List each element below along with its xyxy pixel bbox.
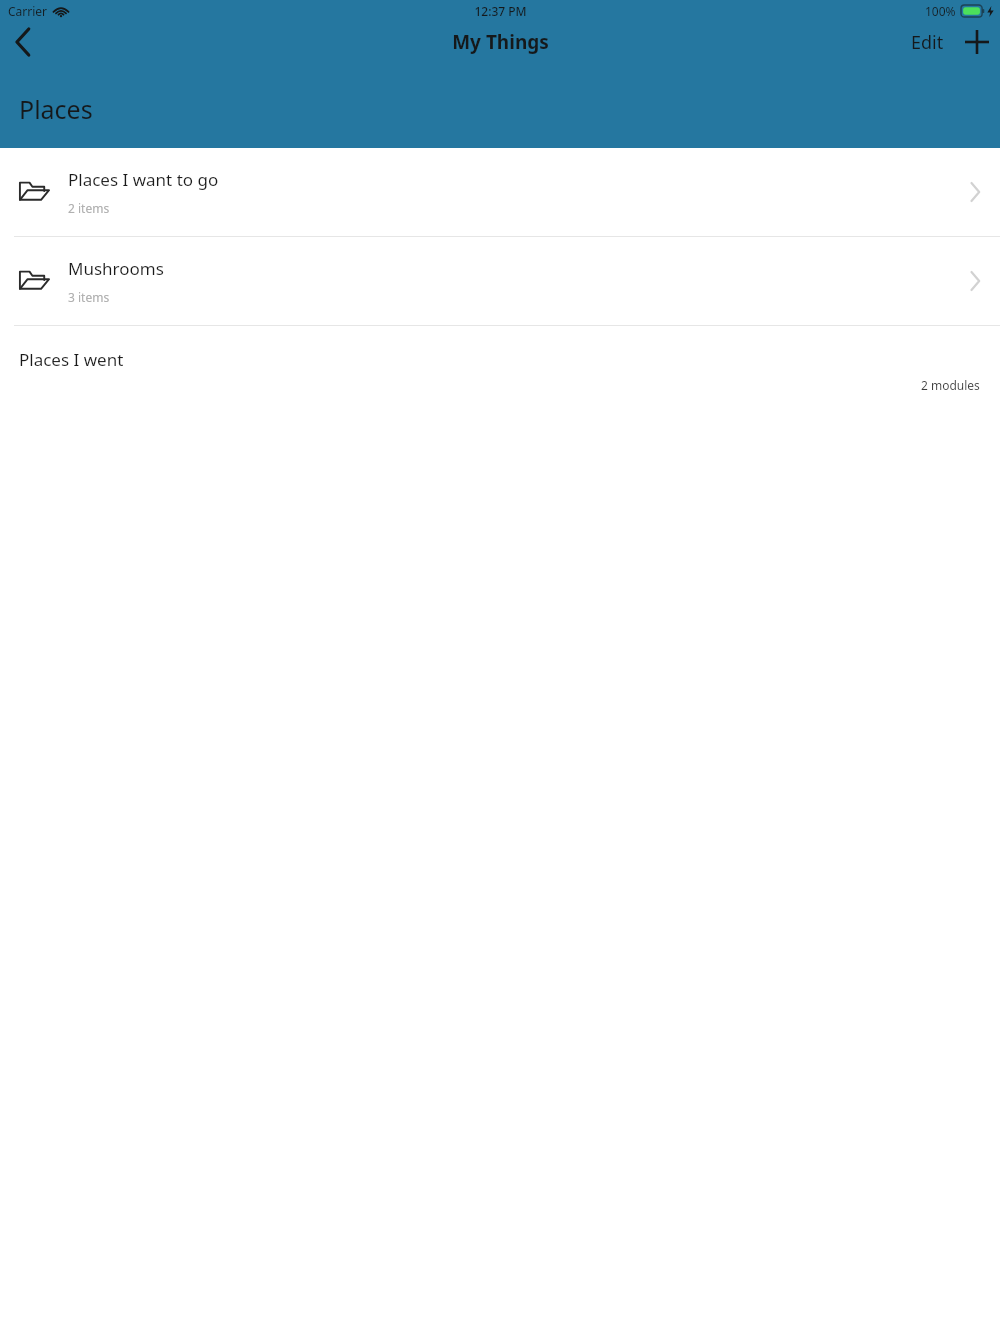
staticText: 2 items [68, 200, 110, 216]
staticText: Places I went [19, 348, 124, 371]
staticText: Places I want to go [68, 168, 219, 191]
staticText: 3 items [68, 289, 110, 305]
staticText: Edit [911, 30, 944, 55]
staticText: 2 modules [921, 377, 980, 393]
button[interactable]: Add [954, 19, 1000, 65]
staticText: My Things [452, 29, 549, 55]
button[interactable]: Edit [905, 20, 950, 65]
staticText: 100% [925, 3, 956, 19]
staticText: Carrier [8, 3, 48, 19]
button[interactable]: Mushrooms [0, 237, 1000, 325]
button[interactable]: Back [0, 19, 46, 65]
staticText: Mushrooms [68, 257, 164, 280]
staticText: 12:37 PM [474, 3, 527, 19]
staticText: Places [19, 92, 93, 126]
button[interactable]: Places I want to go [0, 148, 1000, 236]
